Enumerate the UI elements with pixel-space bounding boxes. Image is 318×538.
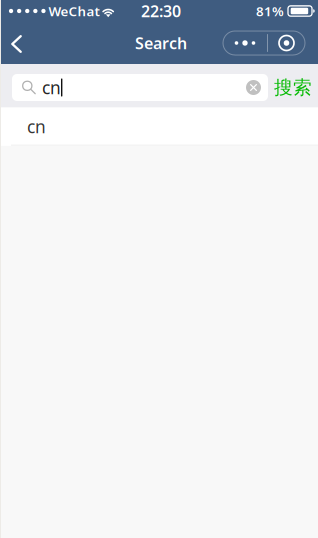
button[interactable]: cn xyxy=(0,107,318,145)
staticText: Search xyxy=(135,32,187,54)
staticText: WeChat xyxy=(48,2,99,20)
staticText: 81% xyxy=(256,2,284,20)
staticText: 22:30 xyxy=(141,0,181,22)
staticText: 搜索 xyxy=(274,76,312,99)
button[interactable]: Clear text xyxy=(239,74,268,101)
staticText: cn xyxy=(27,115,46,138)
button[interactable]: More xyxy=(223,31,267,55)
button[interactable]: Back xyxy=(0,22,38,64)
button[interactable]: Close xyxy=(268,31,305,55)
staticText: cn xyxy=(42,76,61,99)
button[interactable]: 搜索 xyxy=(268,74,318,101)
